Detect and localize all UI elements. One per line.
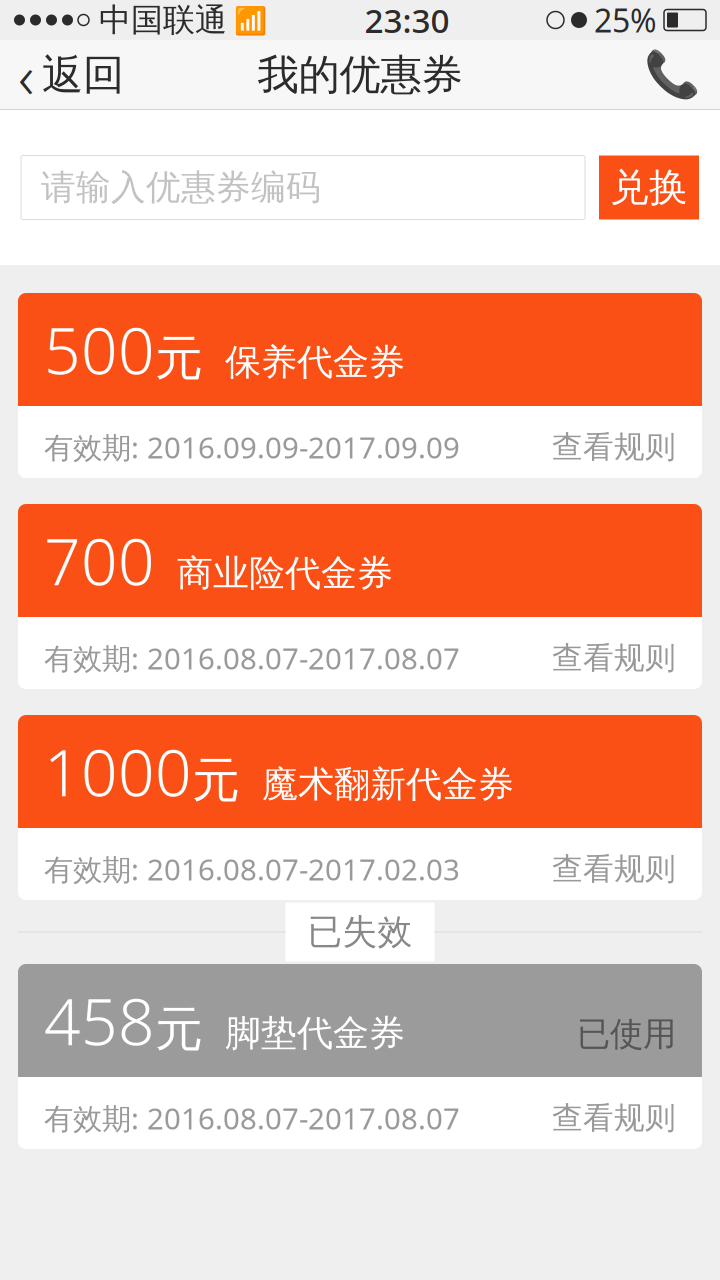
button[interactable]: 500 [18,293,702,478]
staticText: 有效期: [44,849,139,888]
staticText: 📞 [644,49,700,101]
staticText: 500 [44,307,155,392]
staticText: 📶 [227,2,267,38]
staticText: 有效期: [44,1098,139,1137]
staticText: 中国联通 [89,0,227,40]
button[interactable]: 458 [18,964,702,1149]
staticText: 2016.08.07-2017.02.03 [139,849,460,888]
staticText: 查看规则 [552,428,676,466]
staticText: 魔术翻新代金券 [240,762,514,806]
staticText: 1000 [44,729,192,814]
staticText: 保养代金券 [203,340,405,384]
staticText: 25% [594,0,657,41]
staticText: ‹ [18,34,34,116]
staticText: 458 [44,978,155,1063]
staticText: 元 [192,751,240,810]
staticText: 兑换 [610,164,688,211]
staticText: 我的优惠券 [257,50,462,100]
button[interactable]: Call [624,40,720,110]
button[interactable]: 请输入优惠券编码 [21,155,585,219]
staticText: 返回 [42,50,124,100]
staticText: 商业险代金券 [155,551,393,595]
staticText: 查看规则 [552,639,676,677]
staticText: 2016.08.07-2017.08.07 [139,638,460,677]
staticText: 2016.08.07-2017.08.07 [139,1098,460,1137]
staticText: 脚垫代金券 [203,1011,405,1055]
button[interactable]: 兑换 [599,155,699,219]
staticText: 700 [44,518,155,603]
staticText: 已使用 [577,1014,676,1055]
staticText: 元 [155,1000,203,1059]
staticText: 有效期: [44,427,139,466]
staticText: 查看规则 [552,850,676,888]
button[interactable]: 1000 [18,715,702,900]
button[interactable]: 700 [18,504,702,689]
staticText: 2016.09.09-2017.09.09 [139,427,460,466]
staticText: 23:30 [364,0,449,42]
button[interactable]: ‹ [0,40,142,110]
staticText: 请输入优惠券编码 [41,166,321,209]
staticText: 查看规则 [552,1099,676,1137]
staticText: 已失效 [307,911,412,953]
staticText: 有效期: [44,638,139,677]
staticText: 元 [155,329,203,388]
